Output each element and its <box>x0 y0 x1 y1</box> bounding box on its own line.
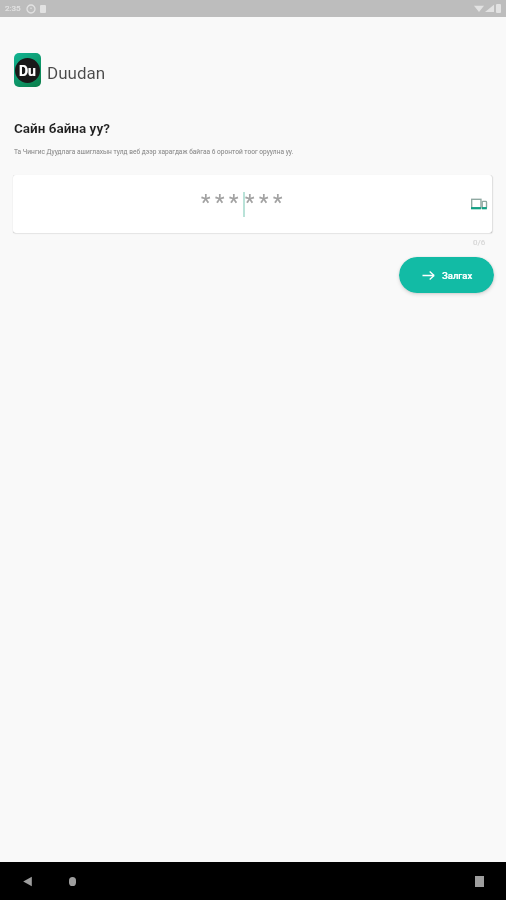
staticText: 0/6 <box>473 238 486 247</box>
button[interactable]: Use other device <box>466 175 492 233</box>
staticText: *** <box>201 190 243 216</box>
staticText: Duudan <box>47 63 106 83</box>
button[interactable]: Back <box>13 867 41 895</box>
staticText: Залгах <box>442 270 473 281</box>
button[interactable]: Recent apps <box>465 867 493 895</box>
staticText: Та Чингис Дуудлага ашиглахын тулд веб дэ… <box>14 148 294 156</box>
staticText: Сайн байна уу? <box>14 120 110 136</box>
button[interactable]: Залгах <box>399 257 494 293</box>
staticText: 2:35 <box>5 4 21 13</box>
button[interactable]: Home <box>58 867 86 895</box>
staticText: Du <box>19 63 36 79</box>
staticText: *** <box>245 190 287 216</box>
